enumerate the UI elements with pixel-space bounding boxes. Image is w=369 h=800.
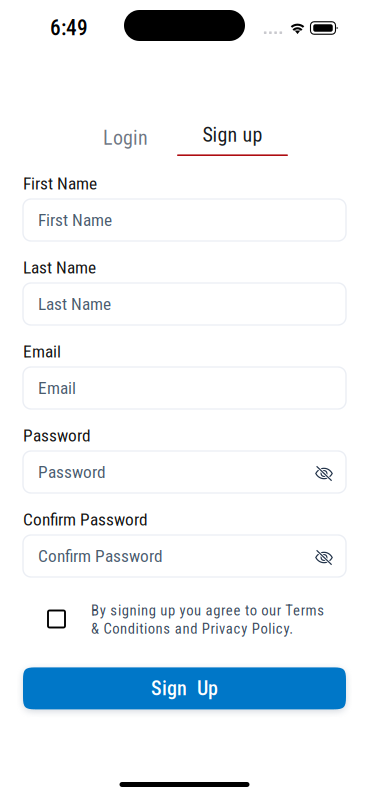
staticText: Last Name bbox=[38, 294, 111, 314]
staticText: Email bbox=[23, 341, 61, 362]
staticText: By signing up you agree to our Terms & C… bbox=[91, 602, 324, 637]
staticText: Confirm Password bbox=[38, 546, 163, 566]
staticText: Password bbox=[38, 462, 106, 482]
staticText: First Name bbox=[23, 173, 97, 194]
button[interactable]: Sign up bbox=[177, 120, 288, 156]
button[interactable]: Agree to Terms & Conditions and Privacy … bbox=[48, 602, 91, 636]
button[interactable]: Show Password bbox=[311, 451, 337, 493]
button[interactable]: Sign Up bbox=[23, 667, 346, 709]
staticText: Sign Up bbox=[151, 677, 218, 700]
staticText: Login bbox=[103, 126, 148, 150]
staticText: Sign up bbox=[202, 123, 262, 147]
staticText: 6:49 bbox=[50, 15, 88, 40]
staticText: First Name bbox=[38, 210, 112, 230]
staticText: Password bbox=[23, 425, 91, 446]
staticText: Email bbox=[38, 378, 76, 398]
staticText: Last Name bbox=[23, 257, 96, 278]
button[interactable]: Show Confirm Password bbox=[311, 535, 337, 577]
staticText: Confirm Password bbox=[23, 509, 148, 530]
button[interactable]: Login bbox=[74, 120, 177, 156]
